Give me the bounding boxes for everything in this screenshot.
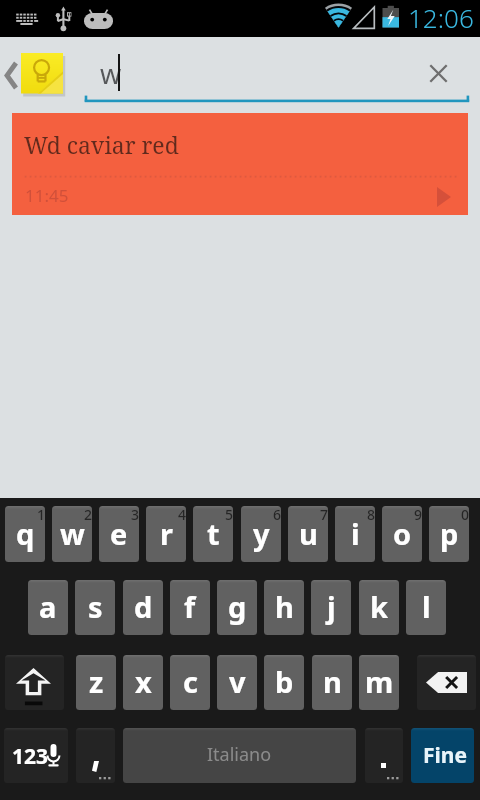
staticText: 5 <box>225 506 233 524</box>
staticText: e <box>110 514 128 553</box>
button[interactable]: Space <box>123 728 356 783</box>
button[interactable] <box>76 728 115 783</box>
staticText: 4 <box>178 506 186 524</box>
staticText: n <box>323 662 342 701</box>
staticText: 11:45 <box>25 184 69 207</box>
button[interactable]: Clear query <box>422 57 455 90</box>
staticText: 7 <box>320 506 328 524</box>
button[interactable]: x <box>123 655 163 710</box>
button[interactable]: t <box>193 506 233 562</box>
button[interactable]: m <box>359 655 399 710</box>
staticText: Fine <box>423 741 467 770</box>
button[interactable]: n <box>312 655 352 710</box>
staticText: Italiano <box>207 742 272 767</box>
button[interactable]: e <box>99 506 139 562</box>
button[interactable]: d <box>123 580 163 635</box>
button[interactable]: Symbols and voice input <box>4 728 68 783</box>
button[interactable]: Shift <box>5 655 64 710</box>
button[interactable]: Search field <box>84 48 418 98</box>
staticText: s <box>88 587 103 626</box>
staticText: 9 <box>414 506 422 524</box>
staticText: j <box>327 587 336 626</box>
button[interactable]: j <box>311 580 351 635</box>
button[interactable]: y <box>241 506 281 562</box>
staticText: 0 <box>461 506 469 524</box>
button[interactable]: i <box>335 506 375 562</box>
button[interactable]: c <box>170 655 210 710</box>
button[interactable] <box>365 728 403 783</box>
staticText: x <box>135 662 152 701</box>
staticText: t <box>207 514 220 553</box>
staticText: d <box>134 587 153 626</box>
button[interactable]: p <box>429 506 469 562</box>
button[interactable]: v <box>217 655 257 710</box>
button[interactable]: q <box>5 506 45 562</box>
button[interactable]: Open notes <box>21 53 65 96</box>
button[interactable]: a <box>28 580 68 635</box>
staticText: 3 <box>131 506 139 524</box>
staticText: w <box>60 514 85 553</box>
button[interactable]: u <box>288 506 328 562</box>
staticText: 2 <box>84 506 92 524</box>
button[interactable]: Fine <box>411 728 474 783</box>
staticText: a <box>39 587 57 626</box>
button[interactable]: Backspace <box>417 655 476 710</box>
staticText: w <box>100 55 122 92</box>
button[interactable]: w <box>52 506 92 562</box>
staticText: 12:06 <box>408 0 474 35</box>
staticText: 1 <box>37 506 45 524</box>
staticText: l <box>422 587 431 626</box>
staticText: b <box>275 662 294 701</box>
button[interactable]: Back <box>0 56 22 94</box>
staticText: 123 <box>12 742 49 771</box>
staticText: h <box>275 587 294 626</box>
staticText: c <box>183 662 198 701</box>
button[interactable]: s <box>75 580 115 635</box>
button[interactable]: z <box>76 655 116 710</box>
staticText: k <box>370 587 388 626</box>
staticText: 6 <box>273 506 281 524</box>
button[interactable]: o <box>382 506 422 562</box>
staticText: z <box>89 662 104 701</box>
staticText: f <box>184 587 196 626</box>
button[interactable]: k <box>359 580 399 635</box>
staticText: r <box>160 514 173 553</box>
button[interactable]: g <box>217 580 257 635</box>
staticText: Wd caviar red <box>24 129 179 160</box>
button[interactable]: l <box>406 580 446 635</box>
staticText: u <box>299 514 318 553</box>
staticText: g <box>228 587 247 626</box>
staticText: y <box>253 514 270 553</box>
staticText: q <box>16 514 35 553</box>
button[interactable]: f <box>170 580 210 635</box>
staticText: m <box>365 662 394 701</box>
staticText: 8 <box>367 506 375 524</box>
staticText: o <box>393 514 412 553</box>
staticText: v <box>229 662 246 701</box>
button[interactable]: b <box>264 655 304 710</box>
button[interactable]: r <box>146 506 186 562</box>
staticText: p <box>440 514 459 553</box>
button[interactable]: h <box>264 580 304 635</box>
button[interactable]: Wd caviar red <box>12 113 468 215</box>
staticText: i <box>351 514 360 553</box>
